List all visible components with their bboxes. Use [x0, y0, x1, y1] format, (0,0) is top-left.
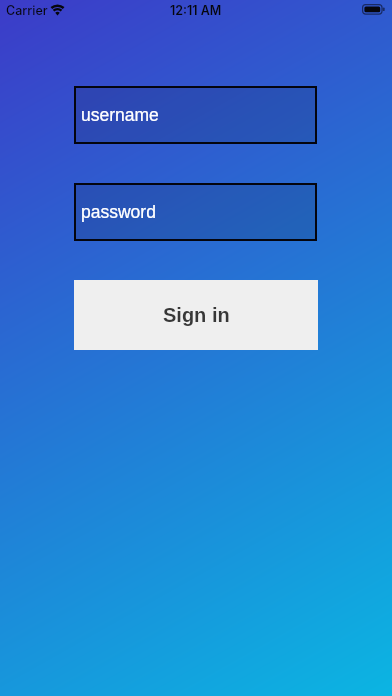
staticText: Sign in [163, 304, 230, 326]
staticText: Carrier [6, 3, 48, 18]
staticText: 12:11 AM [170, 3, 222, 18]
staticText: password [81, 202, 156, 222]
button[interactable]: Sign in [74, 280, 318, 350]
button[interactable]: username [74, 86, 317, 144]
button[interactable]: password [74, 183, 317, 241]
staticText: username [81, 105, 159, 125]
